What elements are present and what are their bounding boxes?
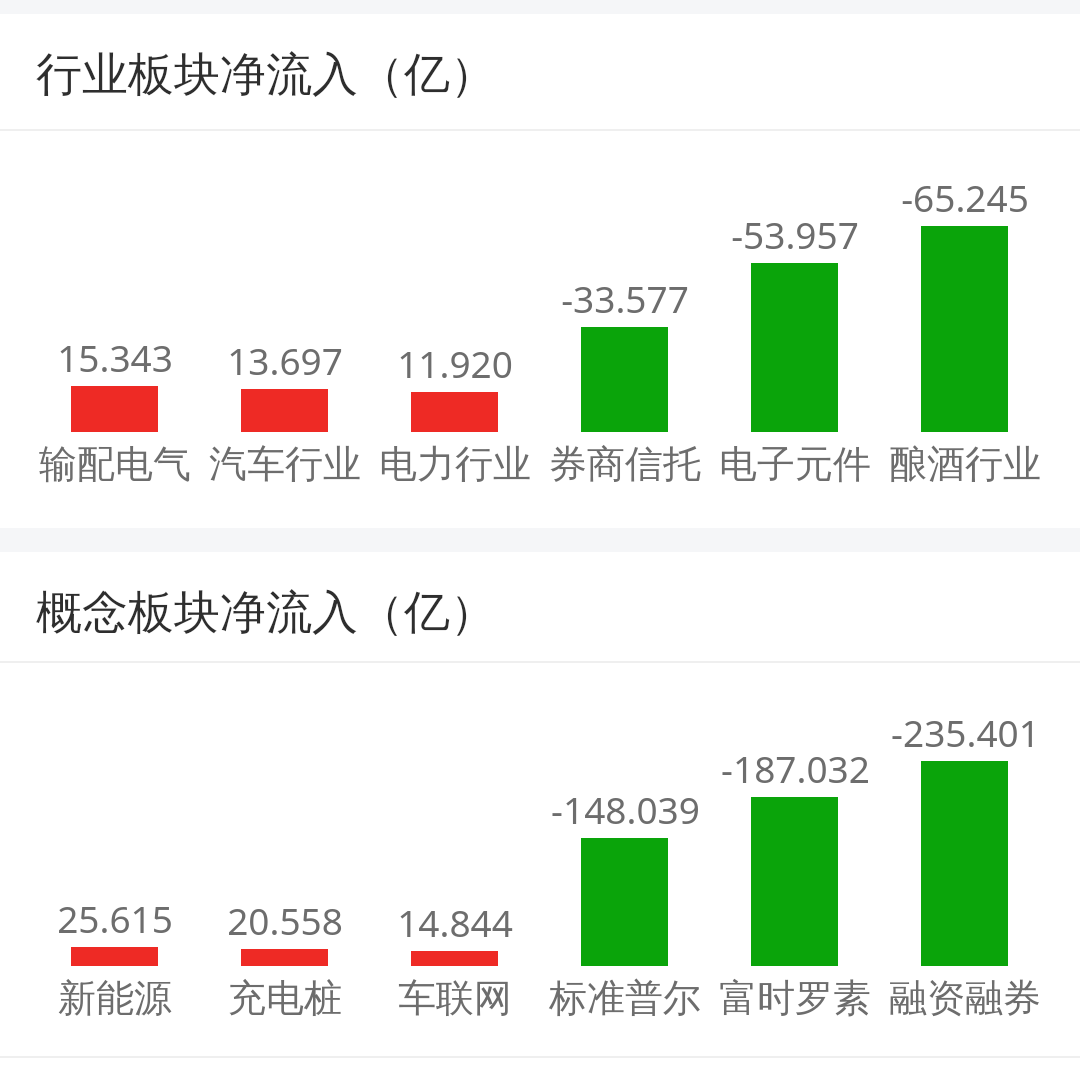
staticText: -53.957 (731, 209, 859, 259)
staticText: 电力行业 (379, 440, 531, 488)
staticText: 14.844 (397, 897, 513, 947)
staticText: -187.032 (721, 743, 870, 793)
staticText: -65.245 (901, 172, 1029, 222)
staticText: 15.343 (57, 332, 173, 382)
staticText: -33.577 (561, 273, 689, 323)
staticText: 酿酒行业 (889, 440, 1041, 488)
staticText: 充电桩 (228, 974, 342, 1022)
staticText: 20.558 (227, 895, 343, 945)
staticText: 券商信托 (549, 440, 701, 488)
staticText: 13.697 (227, 335, 343, 385)
staticText: 汽车行业 (209, 440, 361, 488)
staticText: -148.039 (551, 784, 700, 834)
staticText: 富时罗素 (719, 974, 871, 1022)
staticText: 电子元件 (719, 440, 871, 488)
button[interactable]: 行业板块净流入（亿） (36, 46, 496, 104)
staticText: 车联网 (398, 974, 512, 1022)
staticText: -235.401 (891, 707, 1040, 757)
staticText: 融资融券 (889, 974, 1041, 1022)
button[interactable]: 概念板块净流入（亿） (36, 584, 496, 642)
staticText: 标准普尔 (549, 974, 701, 1022)
staticText: 25.615 (57, 893, 173, 943)
staticText: 新能源 (58, 974, 172, 1022)
staticText: 11.920 (397, 338, 513, 388)
staticText: 输配电气 (39, 440, 191, 488)
